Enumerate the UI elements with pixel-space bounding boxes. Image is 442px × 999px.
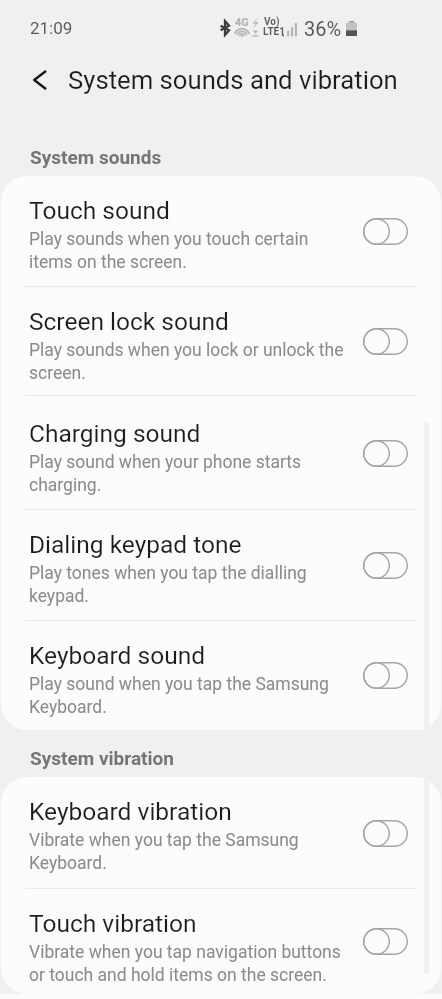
- staticText: Vo): [264, 16, 280, 28]
- button[interactable]: Toggle: [363, 440, 408, 467]
- button[interactable]: Toggle: [363, 552, 408, 579]
- staticText: 4G: [235, 16, 249, 29]
- staticText: Play sounds when you lock or unlock the …: [29, 340, 348, 383]
- button[interactable]: Toggle: [363, 328, 408, 355]
- button[interactable]: Navigate up: [17, 57, 63, 103]
- button[interactable]: Screen lock sound: [1, 287, 441, 396]
- button[interactable]: Keyboard vibration: [1, 777, 441, 889]
- staticText: Keyboard vibration: [29, 797, 232, 826]
- button[interactable]: Toggle: [363, 662, 408, 689]
- button[interactable]: Touch vibration: [1, 889, 441, 994]
- staticText: Touch sound: [29, 196, 170, 225]
- staticText: Vibrate when you tap navigation buttons …: [29, 942, 348, 985]
- button[interactable]: Toggle: [363, 928, 408, 955]
- staticText: Screen lock sound: [29, 307, 229, 336]
- staticText: 21:09: [30, 18, 73, 38]
- staticText: Touch vibration: [29, 909, 197, 938]
- button[interactable]: Toggle: [363, 218, 408, 245]
- staticText: Dialing keypad tone: [29, 530, 242, 559]
- button[interactable]: Dialing keypad tone: [1, 510, 441, 621]
- staticText: Keyboard sound: [29, 641, 205, 670]
- button[interactable]: Touch sound: [1, 176, 441, 287]
- staticText: LTE1: [263, 26, 285, 38]
- staticText: Play sounds when you touch certain items…: [29, 229, 348, 272]
- staticText: Charging sound: [29, 419, 201, 448]
- staticText: Vibrate when you tap the Samsung Keyboar…: [29, 830, 348, 873]
- staticText: Play tones when you tap the dialling key…: [29, 563, 348, 606]
- button[interactable]: Keyboard sound: [1, 621, 441, 730]
- staticText: Play sound when your phone starts chargi…: [29, 452, 348, 495]
- staticText: Play sound when you tap the Samsung Keyb…: [29, 674, 348, 717]
- staticText: 36%: [304, 17, 342, 40]
- button[interactable]: Charging sound: [1, 396, 441, 510]
- staticText: System sounds: [30, 146, 162, 168]
- staticText: System sounds and vibration: [68, 65, 398, 95]
- button[interactable]: Toggle: [363, 820, 408, 847]
- staticText: System vibration: [30, 747, 174, 769]
